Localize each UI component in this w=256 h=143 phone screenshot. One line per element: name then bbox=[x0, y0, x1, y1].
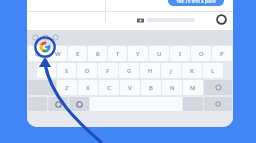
button[interactable]: O bbox=[191, 46, 211, 61]
button[interactable]: I bbox=[170, 46, 190, 61]
button[interactable]: G bbox=[119, 63, 139, 78]
staticText: N bbox=[170, 84, 175, 92]
staticText: J bbox=[170, 67, 172, 75]
staticText: S bbox=[65, 67, 69, 75]
button[interactable]: X bbox=[78, 80, 98, 95]
staticText: Yes! I'll find a place bbox=[176, 0, 216, 4]
staticText: Z bbox=[65, 84, 69, 92]
button[interactable]: Y bbox=[128, 46, 148, 61]
staticText: D bbox=[85, 67, 90, 75]
button[interactable]: J bbox=[161, 63, 181, 78]
button[interactable]: Backspace bbox=[204, 80, 232, 95]
button[interactable]: U bbox=[149, 46, 169, 61]
staticText: C bbox=[107, 84, 111, 92]
button[interactable]: Toolbar action 2 bbox=[42, 34, 49, 41]
staticText: U bbox=[157, 50, 162, 58]
button[interactable]: Toolbar action 3 bbox=[52, 34, 59, 41]
button[interactable]: A bbox=[37, 63, 56, 78]
staticText: K bbox=[190, 67, 194, 75]
button[interactable]: Enter bbox=[204, 97, 232, 111]
button[interactable]: S bbox=[57, 63, 76, 78]
button[interactable]: B bbox=[141, 80, 161, 95]
button[interactable]: E bbox=[68, 46, 87, 61]
button[interactable]: V bbox=[120, 80, 140, 95]
staticText: G bbox=[127, 67, 132, 75]
staticText: V bbox=[128, 84, 132, 92]
button[interactable]: P bbox=[212, 46, 232, 61]
button[interactable]: Z bbox=[57, 80, 77, 95]
staticText: L bbox=[211, 67, 215, 75]
staticText: T bbox=[116, 50, 120, 58]
button[interactable]: N bbox=[162, 80, 182, 95]
button[interactable]: L bbox=[203, 63, 223, 78]
button[interactable]: Google voice key highlight bbox=[34, 36, 56, 58]
button[interactable]: Shift bbox=[28, 80, 56, 95]
button[interactable]: Toolbar action 1 bbox=[32, 34, 39, 41]
button[interactable]: Q bbox=[28, 46, 47, 61]
staticText: P bbox=[220, 50, 224, 58]
button[interactable]: H bbox=[140, 63, 160, 78]
button[interactable]: M bbox=[183, 80, 203, 95]
button[interactable]: F bbox=[98, 63, 118, 78]
button[interactable]: T bbox=[108, 46, 127, 61]
staticText: O bbox=[199, 50, 204, 58]
staticText: X bbox=[86, 84, 90, 92]
button[interactable] bbox=[137, 14, 233, 26]
button[interactable]: Send bbox=[216, 14, 227, 25]
button[interactable]: D bbox=[77, 63, 97, 78]
button[interactable]: K bbox=[182, 63, 202, 78]
staticText: R bbox=[96, 50, 100, 58]
staticText: M bbox=[190, 84, 196, 92]
staticText: E bbox=[76, 50, 80, 58]
button[interactable]: C bbox=[99, 80, 119, 95]
staticText: Q bbox=[35, 50, 40, 58]
staticText: B bbox=[149, 84, 153, 92]
staticText: Y bbox=[136, 50, 140, 58]
staticText: A bbox=[45, 67, 49, 75]
button[interactable]: Settings bbox=[69, 97, 89, 111]
staticText: I bbox=[179, 50, 182, 58]
button[interactable]: W bbox=[48, 46, 67, 61]
button[interactable]: Emoji bbox=[48, 97, 68, 111]
staticText: W bbox=[55, 50, 61, 58]
staticText: H bbox=[148, 67, 153, 75]
button[interactable]: R bbox=[88, 46, 107, 61]
staticText: F bbox=[106, 67, 110, 75]
